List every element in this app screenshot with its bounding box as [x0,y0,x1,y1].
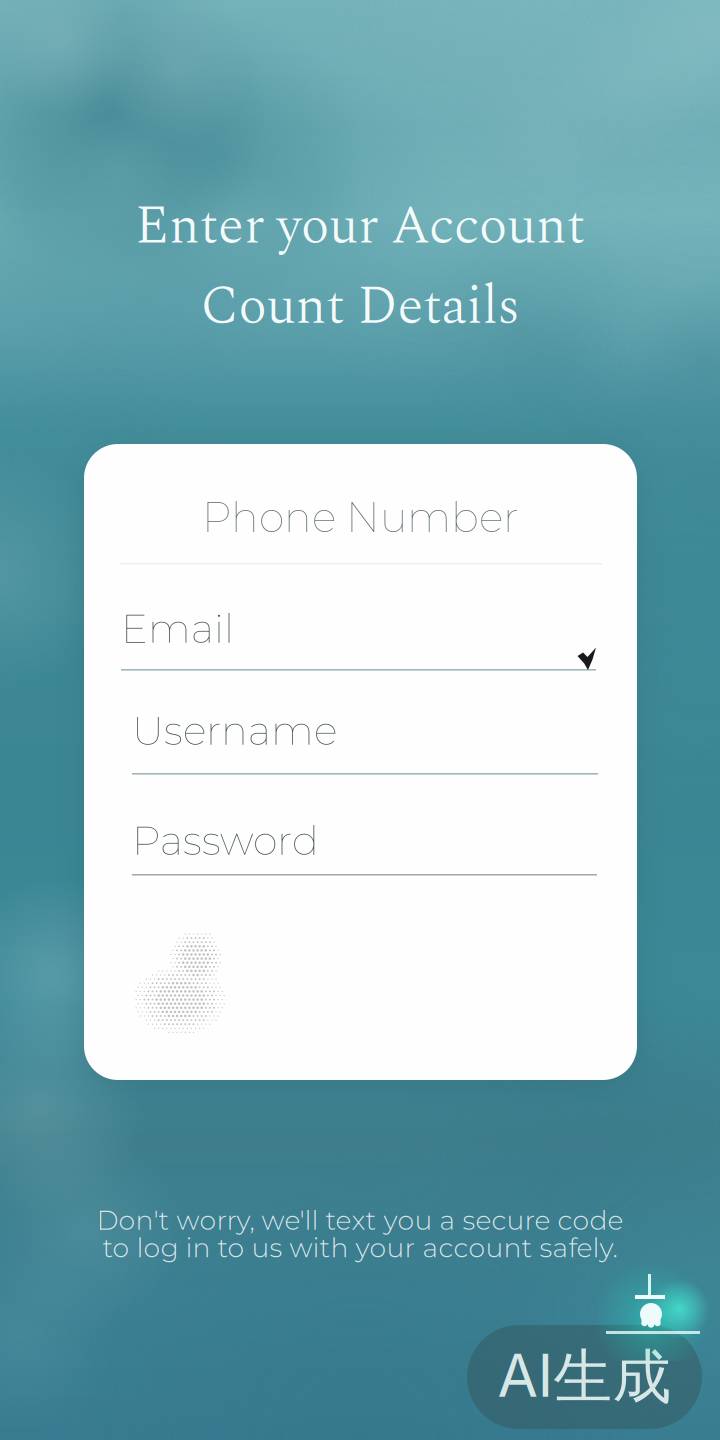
button[interactable]: Password [84,832,637,918]
staticText: Email [121,604,234,653]
staticText: to log in to us with your account safely… [102,1231,617,1264]
staticText: Username [132,706,337,755]
button[interactable]: Username [84,731,637,817]
staticText: Don't worry, we'll text you a secure cod… [96,1204,623,1236]
staticText: Count Details [200,266,519,347]
staticText: AI生成 [497,1340,671,1414]
staticText: Phone Number [202,492,519,542]
staticText: Enter your Account [135,186,585,267]
button[interactable]: Email [84,627,637,713]
button[interactable]: AI generated [467,1325,702,1429]
staticText: Password [132,816,319,865]
